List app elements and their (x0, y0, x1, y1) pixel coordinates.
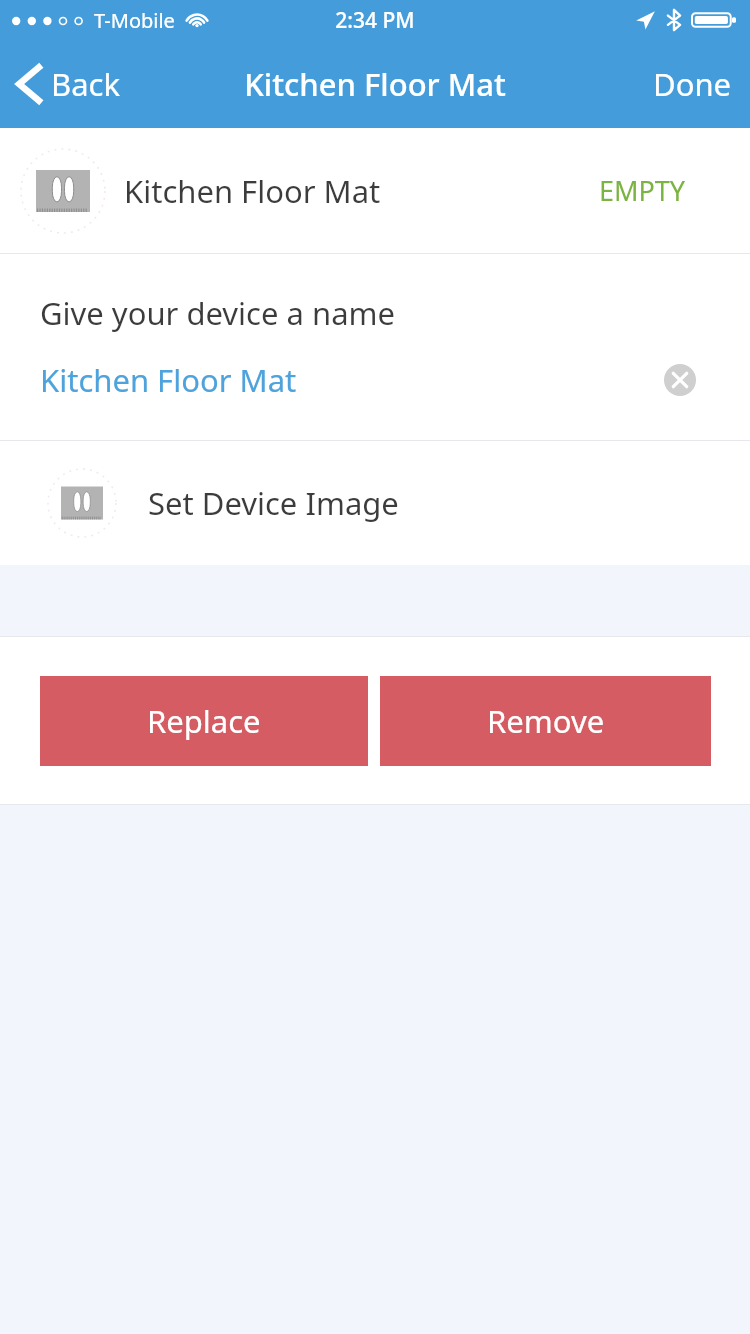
staticText: Remove (487, 700, 605, 742)
button[interactable]: Remove (380, 676, 711, 766)
staticText: Replace (147, 700, 261, 742)
staticText: Kitchen Floor Mat (124, 170, 381, 212)
staticText: Give your device a name (40, 292, 396, 334)
staticText: Set Device Image (148, 482, 399, 524)
staticText: Kitchen Floor Mat (244, 63, 506, 105)
staticText: T-Mobile (94, 7, 175, 34)
staticText: Done (653, 63, 732, 105)
button[interactable]: Set Device Image (0, 441, 750, 565)
button[interactable]: Clear text (664, 364, 696, 396)
button[interactable]: Done (635, 53, 750, 115)
staticText: Back (51, 63, 120, 105)
button[interactable]: Back (0, 55, 136, 113)
staticText: EMPTY (599, 172, 686, 209)
button[interactable]: Kitchen Floor Mat (0, 356, 750, 404)
button[interactable]: Replace (40, 676, 368, 766)
button[interactable]: Kitchen Floor Mat (0, 128, 750, 253)
staticText: Kitchen Floor Mat (40, 359, 297, 401)
staticText: 2:34 PM (335, 6, 415, 35)
